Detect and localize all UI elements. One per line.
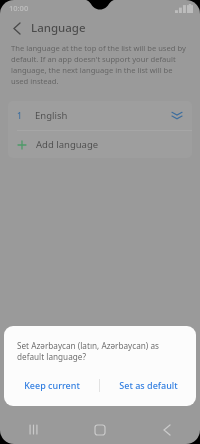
staticText: Language [31,20,86,36]
staticText: Add language [36,138,99,151]
button[interactable]: Navigate up [8,19,26,37]
staticText: Keep current [24,379,80,391]
button[interactable]: Back [133,415,200,444]
staticText: English [35,109,68,122]
button[interactable]: Add language [8,131,192,158]
button[interactable]: 1 [8,101,192,130]
staticText: Set as default [119,379,178,391]
staticText: Set Azərbaycan (latın, Azərbaycan) as de… [17,340,183,363]
staticText: 10:00 [9,3,29,13]
button[interactable]: Set as default [100,373,196,397]
button[interactable]: Home [66,415,133,444]
staticText: 1 [17,110,22,122]
button[interactable]: Recent apps [0,415,66,444]
button[interactable]: Keep current [4,373,99,397]
staticText: The language at the top of the list will… [11,43,189,86]
